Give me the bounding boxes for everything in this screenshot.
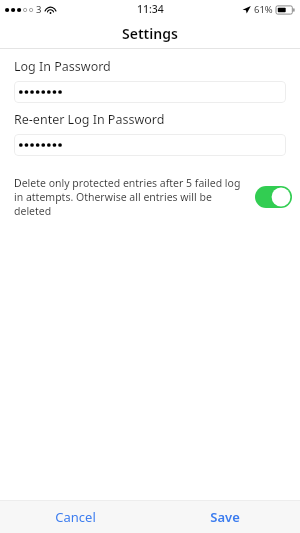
staticText: Settings xyxy=(122,24,178,43)
button[interactable]: Save xyxy=(150,501,300,533)
staticText: Delete only protected entries after 5 fa… xyxy=(14,176,249,218)
staticText: Cancel xyxy=(55,508,96,526)
button[interactable]: Cancel xyxy=(0,501,150,533)
staticText: 11:34 xyxy=(137,2,164,16)
button[interactable]: Password input xyxy=(14,81,286,103)
staticText: Save xyxy=(210,508,240,526)
button[interactable]: Delete only protected entries toggle, on xyxy=(255,186,292,208)
staticText: Re-enter Log In Password xyxy=(14,111,165,128)
staticText: 3 xyxy=(36,3,42,16)
staticText: Log In Password xyxy=(14,58,111,75)
button[interactable]: Password input xyxy=(14,134,286,156)
staticText: 61% xyxy=(254,3,273,16)
